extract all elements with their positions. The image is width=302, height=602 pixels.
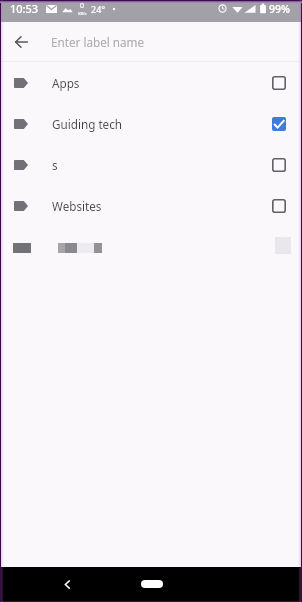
staticText: 99% [269,2,290,16]
staticText: Apps [52,75,80,91]
button[interactable]: Back [55,572,79,596]
button[interactable]: Toggle [265,110,293,138]
staticText: Guiding tech [52,116,123,132]
staticText: 0 [80,1,85,11]
button[interactable]: Apps [1,62,301,103]
staticText: Enter label name [51,34,145,50]
staticText: KB/s [78,11,87,16]
staticText: s [52,157,58,173]
button[interactable]: Toggle [265,151,293,179]
button[interactable]: Toggle [265,192,293,220]
button[interactable]: Back [1,22,41,61]
staticText: Websites [52,198,102,214]
button[interactable]: Toggle [265,69,293,97]
button[interactable]: s [1,144,301,185]
button[interactable]: Guiding tech [1,103,301,144]
button[interactable]: Home [141,580,163,588]
staticText: 24° [91,3,106,15]
button[interactable]: Websites [1,185,301,226]
staticText: 10:53 [10,1,39,16]
